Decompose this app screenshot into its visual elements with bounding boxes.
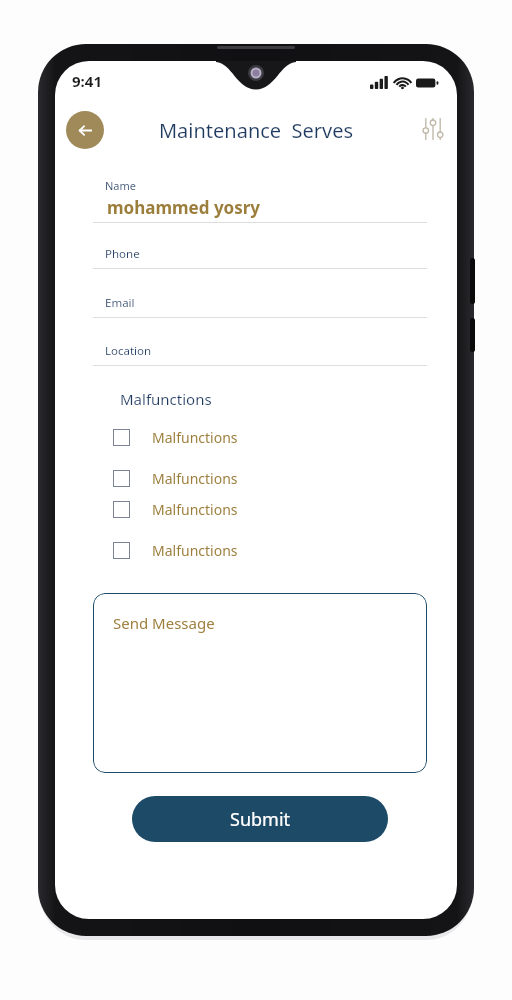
- staticText: Malfunctions: [152, 428, 238, 447]
- staticText: Malfunctions: [152, 500, 238, 519]
- button[interactable]: Malfunctions: [113, 424, 238, 450]
- button[interactable]: Malfunctions: [113, 465, 238, 491]
- staticText: Submit: [230, 807, 291, 832]
- staticText: Location: [105, 343, 152, 359]
- button[interactable]: Back: [66, 111, 104, 149]
- button[interactable]: Filter settings: [415, 111, 451, 147]
- staticText: Send Message: [113, 613, 215, 633]
- button[interactable]: Send Message: [93, 593, 427, 773]
- button[interactable]: Malfunctions: [113, 537, 238, 563]
- button[interactable]: [93, 236, 427, 272]
- staticText: Phone: [105, 246, 140, 262]
- button[interactable]: Submit: [132, 796, 388, 842]
- button[interactable]: [93, 333, 427, 369]
- button[interactable]: Malfunctions: [113, 496, 238, 522]
- staticText: Name: [105, 178, 137, 193]
- staticText: Malfunctions: [152, 541, 238, 560]
- staticText: mohammed yosry: [107, 196, 261, 219]
- staticText: Malfunctions: [120, 389, 212, 409]
- staticText: 9:41: [72, 71, 102, 91]
- staticText: Malfunctions: [152, 469, 238, 488]
- staticText: Maintenance Serves: [55, 117, 457, 144]
- button[interactable]: [93, 285, 427, 321]
- staticText: Email: [105, 295, 135, 311]
